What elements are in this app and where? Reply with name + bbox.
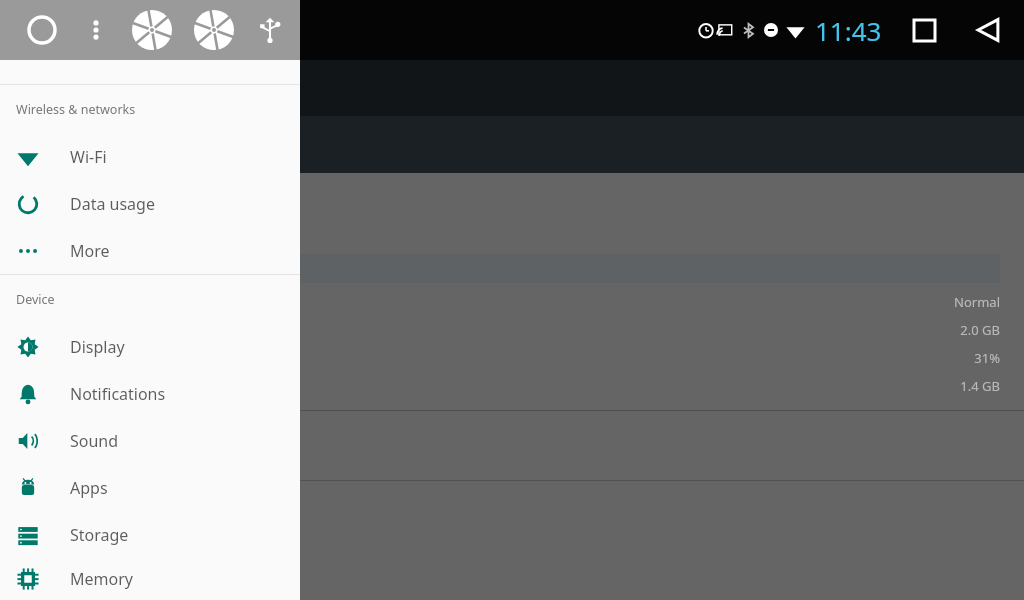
button[interactable]: Storage: [0, 511, 300, 558]
staticText: Storage: [70, 524, 129, 546]
button[interactable]: Back: [966, 8, 1010, 52]
button[interactable]: Display: [0, 323, 300, 370]
staticText: Display: [70, 336, 125, 358]
button[interactable]: Sound: [0, 417, 300, 464]
button[interactable]: Notifications: [0, 370, 300, 417]
button[interactable]: Recents: [904, 10, 944, 50]
staticText: Settings Home: [70, 19, 181, 41]
button[interactable]: Settings Home: [0, 0, 300, 60]
staticText: Normal: [954, 293, 1000, 311]
staticText: 11:43: [815, 13, 882, 48]
button[interactable]: More options: [80, 14, 112, 46]
button[interactable]: Record: [22, 10, 62, 50]
staticText: Sound: [70, 430, 119, 452]
staticText: Apps: [70, 477, 108, 499]
button[interactable]: More: [0, 227, 300, 274]
button[interactable]: Screenshot: [192, 8, 236, 52]
staticText: 2.0 GB: [960, 321, 1000, 339]
staticText: Memory: [70, 568, 133, 590]
button[interactable]: Memory: [0, 558, 300, 600]
button[interactable]: Apps: [0, 464, 300, 511]
button[interactable]: Wi-Fi: [0, 133, 300, 180]
button[interactable]: Camera: [130, 8, 174, 52]
staticText: Wireless & networks: [16, 101, 136, 118]
button[interactable]: Data usage: [0, 180, 300, 227]
staticText: 31%: [974, 349, 1000, 367]
button[interactable]: USB: [254, 14, 286, 46]
staticText: Device: [16, 291, 55, 308]
staticText: More: [70, 240, 110, 262]
staticText: Notifications: [70, 383, 166, 405]
staticText: Data usage: [70, 193, 155, 215]
staticText: Wi-Fi: [70, 146, 107, 168]
staticText: 1.4 GB: [960, 377, 1000, 395]
